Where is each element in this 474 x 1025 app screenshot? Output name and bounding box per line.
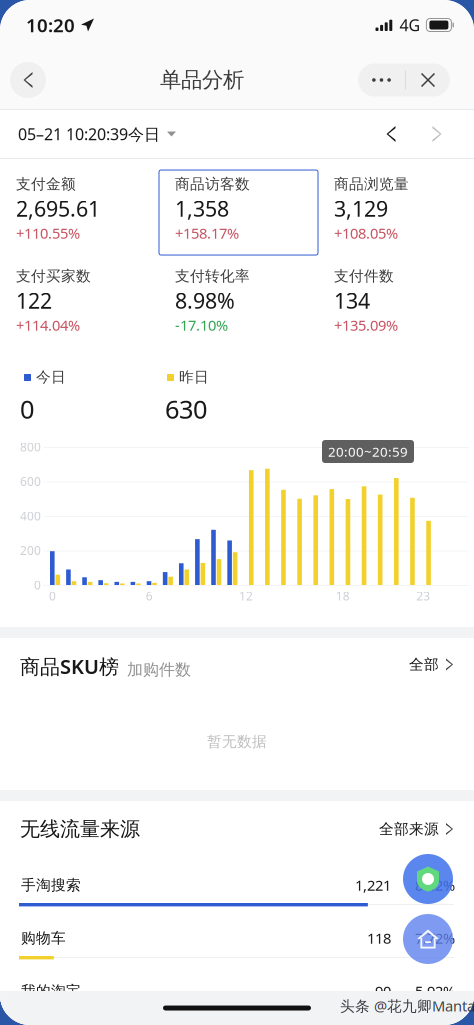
staticText: 800 [20,439,41,455]
staticText: 2,695.61 [16,194,100,223]
staticText: +110.55% [16,223,80,243]
staticText: 1,221 [355,875,391,895]
staticText: 0 [49,588,56,604]
staticText: 支付转化率 [175,267,250,285]
button[interactable]: 支付买家数 [0,262,159,347]
button[interactable]: 全部 [409,649,453,679]
staticText: 80.2% [415,875,455,895]
staticText: 购物车 [21,929,66,947]
staticText: 18 [336,588,350,604]
staticText: 商品SKU榜 [20,653,119,679]
staticText: 0 [20,392,34,426]
staticText: 今日 [36,368,66,386]
staticText: 200 [20,542,41,558]
button[interactable]: 支付金额 [0,170,159,255]
staticText: 90 [375,981,391,1001]
staticText: 商品浏览量 [334,175,409,193]
staticText: +108.05% [334,223,398,243]
staticText: 7.72% [415,928,455,948]
staticText: 全部来源 [379,820,439,838]
button[interactable]: 手淘搜索 [0,857,474,910]
staticText: 4G [399,14,420,36]
staticText: 05–21 10:20:39今日 [18,123,160,145]
staticText: 600 [20,473,41,489]
button[interactable]: 支付转化率 [159,262,318,347]
button[interactable]: 全部来源 [379,814,453,844]
staticText: 头条 @花九卿Manta [340,996,474,1015]
button[interactable]: Home [403,914,453,964]
staticText: 630 [165,392,207,426]
staticText: 0 [34,577,41,593]
staticText: +158.17% [175,223,239,243]
button[interactable]: 商品浏览量 [318,170,474,255]
staticText: 118 [367,928,391,948]
button[interactable]: Back [10,62,46,98]
staticText: 10:20 [26,13,75,37]
staticText: 5.92% [415,981,455,1001]
staticText: 12 [239,588,253,604]
staticText: 23 [416,588,430,604]
staticText: 20:00~20:59 [328,443,408,460]
staticText: 122 [16,286,52,315]
button[interactable]: 商品访客数 [159,170,318,255]
button[interactable]: Next day [420,117,454,151]
staticText: 6 [146,588,153,604]
staticText: 我的淘宝 [21,982,81,1000]
staticText: 全部 [409,655,439,673]
button[interactable]: 支付件数 [318,262,474,347]
staticText: 单品分析 [160,67,244,93]
button[interactable]: 购物车 [0,910,474,963]
staticText: 昨日 [179,368,209,386]
staticText: 加购件数 [127,660,191,679]
button[interactable]: More [358,63,405,96]
staticText: 手淘搜索 [21,876,81,894]
staticText: 8.98% [175,286,235,315]
staticText: 1,358 [175,194,229,223]
staticText: 支付件数 [334,267,394,285]
button[interactable]: 05–21 10:20:39今日 [18,118,176,150]
staticText: -17.10% [175,315,228,335]
staticText: 暂无数据 [207,732,267,750]
staticText: +114.04% [16,315,80,335]
button[interactable]: Assistant [403,854,453,904]
button[interactable]: Close [406,63,450,96]
staticText: 支付金额 [16,175,76,193]
button[interactable]: Previous day [374,117,408,151]
staticText: 无线流量来源 [20,817,140,841]
staticText: 134 [334,286,370,315]
staticText: 400 [20,508,41,524]
staticText: 商品访客数 [175,175,250,193]
staticText: +135.09% [334,315,398,335]
staticText: 支付买家数 [16,267,91,285]
button[interactable]: 我的淘宝 [0,963,474,1016]
staticText: 3,129 [334,194,388,223]
